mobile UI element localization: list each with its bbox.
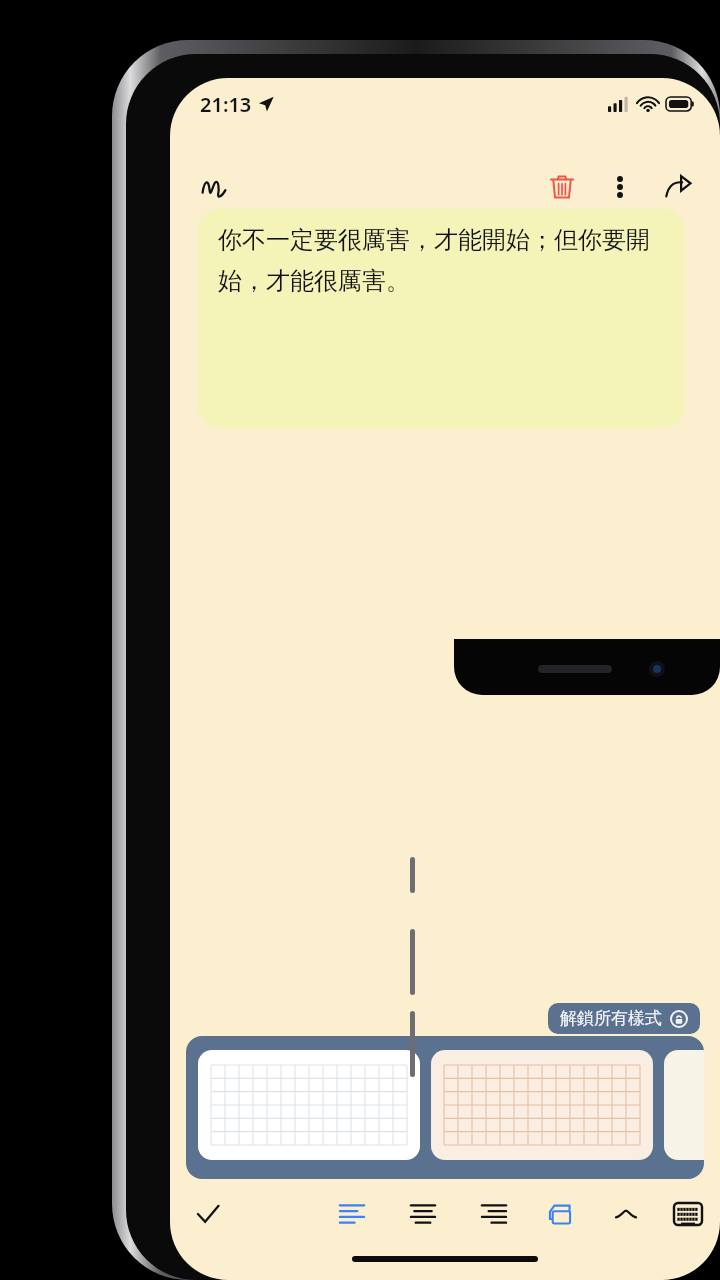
button[interactable]: Share	[654, 163, 702, 211]
staticText: 解鎖所有樣式	[560, 1008, 662, 1029]
button[interactable]: Done	[184, 1190, 232, 1238]
staticText: 21:13	[200, 91, 252, 118]
button[interactable]: 解鎖所有樣式	[548, 1003, 700, 1034]
button[interactable]: 你不一定要很厲害，才能開始；但你要開始，才能很厲害。	[198, 209, 685, 428]
button[interactable]: Delete	[538, 163, 586, 211]
button[interactable]	[664, 1050, 704, 1160]
button[interactable]: Collapse	[602, 1190, 650, 1238]
button[interactable]: Keyboard	[664, 1190, 712, 1238]
button[interactable]: More options	[596, 163, 644, 211]
staticText: 你不一定要很厲害，才能開始；但你要開始，才能很厲害。	[218, 225, 669, 296]
button[interactable]: Align center	[399, 1190, 447, 1238]
button[interactable]	[198, 1050, 420, 1160]
button[interactable]: Scribble	[190, 163, 238, 211]
button[interactable]: Align right	[470, 1190, 518, 1238]
button[interactable]: Align left	[328, 1190, 376, 1238]
button[interactable]	[431, 1050, 653, 1160]
button[interactable]: Background style	[536, 1190, 584, 1238]
